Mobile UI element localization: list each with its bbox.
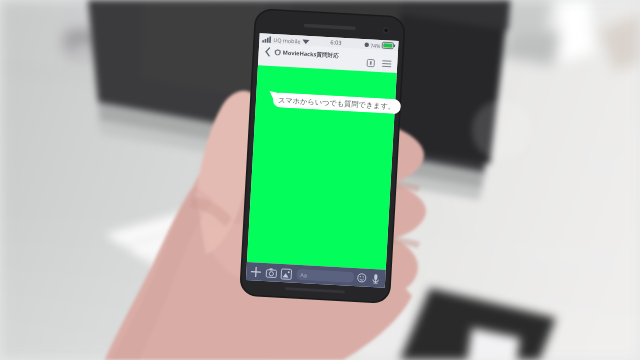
button[interactable]: Menu — [381, 58, 392, 70]
button[interactable]: Photos — [279, 267, 293, 280]
staticText: スマホからいつでも質問できます。 — [278, 95, 396, 111]
staticText: UQ mobile — [273, 36, 300, 45]
button[interactable]: Camera — [264, 266, 278, 280]
button[interactable]: Add — [249, 265, 263, 279]
button[interactable]: Voice message — [369, 272, 383, 285]
button[interactable]: Aa — [296, 269, 355, 283]
staticText: 74% — [370, 41, 381, 49]
button[interactable]: Back — [261, 43, 273, 59]
button[interactable]: Albums — [365, 57, 377, 69]
staticText: MovieHacks質問対応 — [282, 49, 340, 60]
staticText: 6:03 — [330, 38, 342, 47]
button[interactable]: Emoji — [355, 271, 369, 285]
staticText: Aa — [300, 271, 308, 278]
other: Hand holding a phone showing a LINE chat… — [0, 0, 640, 360]
